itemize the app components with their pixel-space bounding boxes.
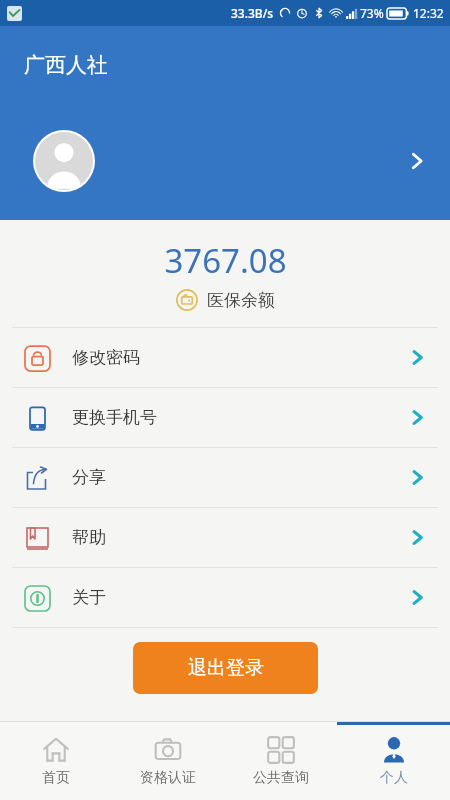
staticText: 首页 <box>42 769 70 787</box>
staticText: 退出登录 <box>188 656 264 680</box>
staticText: 个人 <box>380 769 408 787</box>
button[interactable]: 个人 <box>337 722 450 800</box>
button[interactable]: 首页 <box>0 722 112 800</box>
button[interactable]: Profile details <box>0 102 450 220</box>
button[interactable]: 分享 <box>0 448 450 507</box>
staticText: 广西人社 <box>24 52 108 78</box>
staticText: 公共查询 <box>253 769 309 787</box>
staticText: 修改密码 <box>72 347 140 368</box>
staticText: 更换手机号 <box>72 407 157 428</box>
staticText: 3767.08 <box>164 238 287 283</box>
staticText: 关于 <box>72 587 106 608</box>
button[interactable]: 公共查询 <box>224 722 337 800</box>
button[interactable]: 关于 <box>0 568 450 627</box>
staticText: 医保余额 <box>207 290 275 311</box>
other: Profile details <box>404 148 430 174</box>
staticText: 帮助 <box>72 527 106 548</box>
button[interactable]: 帮助 <box>0 508 450 567</box>
button[interactable]: 更换手机号 <box>0 388 450 447</box>
staticText: 12:32 <box>413 5 444 21</box>
staticText: 73% <box>360 5 384 21</box>
staticText: 分享 <box>72 467 106 488</box>
button[interactable]: 退出登录 <box>133 642 318 694</box>
button[interactable]: 资格认证 <box>112 722 224 800</box>
button[interactable]: 修改密码 <box>0 328 450 387</box>
staticText: 33.3B/s <box>231 5 274 21</box>
staticText: 资格认证 <box>140 769 196 787</box>
